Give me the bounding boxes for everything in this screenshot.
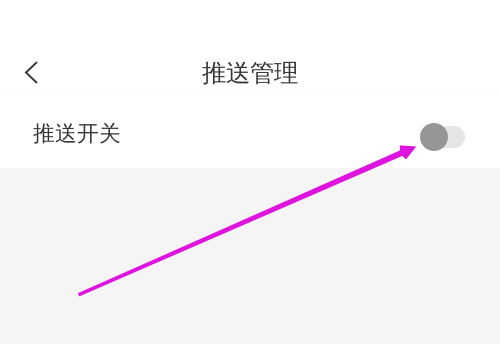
button[interactable]: Back <box>0 0 54 96</box>
staticText: 推送管理 <box>202 58 298 88</box>
button[interactable]: 推送开关 <box>0 96 500 168</box>
staticText: 推送开关 <box>33 120 121 147</box>
